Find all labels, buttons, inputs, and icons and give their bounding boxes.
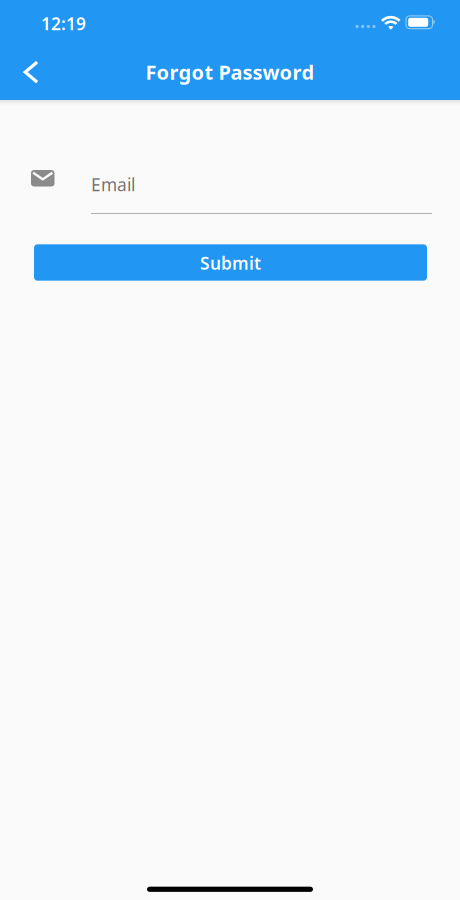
button[interactable]: Email: [31, 163, 431, 215]
button[interactable]: Submit: [34, 244, 427, 281]
staticText: Submit: [200, 252, 261, 275]
staticText: Email: [91, 173, 135, 196]
staticText: 12:19: [41, 12, 86, 35]
button[interactable]: Back: [7, 48, 55, 96]
staticText: Forgot Password: [145, 59, 314, 85]
